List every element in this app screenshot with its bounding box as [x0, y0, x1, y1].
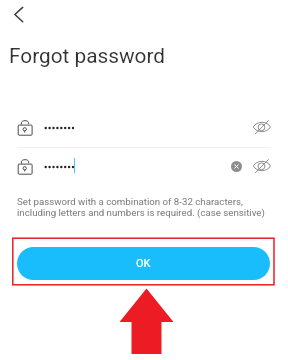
staticText: OK — [136, 257, 151, 270]
button[interactable]: OK — [17, 247, 270, 280]
button[interactable]: Confirm password — [17, 149, 227, 186]
button[interactable]: Back — [4, 0, 36, 32]
button[interactable]: New password — [17, 110, 227, 147]
staticText: Forgot password — [9, 44, 166, 68]
button[interactable]: Show password — [252, 117, 272, 137]
button[interactable]: Clear text — [231, 161, 242, 172]
staticText: Set password with a combination of 8-32 … — [17, 196, 265, 218]
button[interactable]: Show password — [252, 156, 272, 176]
